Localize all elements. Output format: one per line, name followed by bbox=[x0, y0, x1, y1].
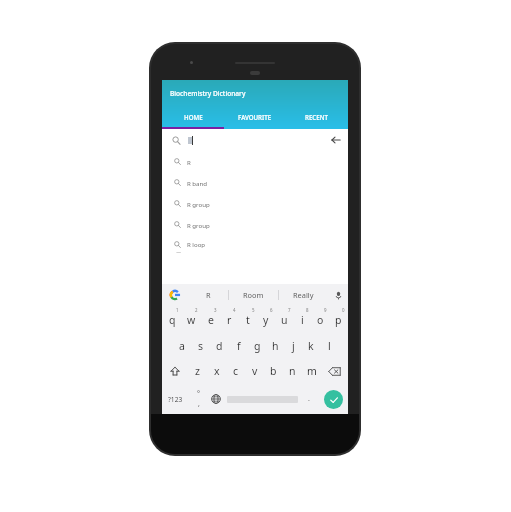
button[interactable]: k bbox=[302, 332, 320, 358]
button[interactable]: Google bbox=[162, 284, 188, 306]
staticText: u bbox=[281, 313, 288, 327]
button[interactable]: m bbox=[302, 358, 321, 384]
button[interactable]: f bbox=[229, 332, 248, 358]
staticText: o bbox=[317, 313, 324, 327]
staticText: w bbox=[187, 313, 196, 327]
button[interactable]: u bbox=[275, 306, 293, 332]
button[interactable]: a bbox=[172, 332, 191, 358]
button[interactable]: j bbox=[284, 332, 302, 358]
staticText: c bbox=[233, 364, 239, 378]
button[interactable]: Shift bbox=[162, 358, 188, 384]
button[interactable]: n bbox=[283, 358, 302, 384]
button[interactable]: R group bbox=[168, 214, 342, 235]
staticText: R band bbox=[187, 179, 208, 187]
button[interactable]: z bbox=[188, 358, 207, 384]
button[interactable]: Back bbox=[328, 132, 344, 148]
staticText: 5 bbox=[252, 307, 255, 313]
staticText: R group bbox=[187, 200, 210, 208]
staticText: g bbox=[254, 339, 261, 353]
staticText: 7 bbox=[288, 307, 291, 313]
staticText: R loop bbox=[187, 240, 206, 248]
staticText: h bbox=[272, 339, 279, 353]
button[interactable]: p bbox=[329, 306, 347, 332]
button[interactable]: s bbox=[191, 332, 210, 358]
staticText: Biochemistry Dictionary bbox=[170, 89, 246, 98]
button[interactable]: R loop bbox=[168, 235, 342, 253]
staticText: ° bbox=[197, 389, 200, 399]
staticText: 9 bbox=[324, 307, 327, 313]
staticText: ?123 bbox=[168, 395, 183, 404]
button[interactable]: o bbox=[311, 306, 329, 332]
button[interactable]: i bbox=[293, 306, 311, 332]
button[interactable] bbox=[225, 384, 300, 414]
staticText: m bbox=[307, 364, 317, 378]
button[interactable]: . bbox=[300, 384, 318, 414]
staticText: Really bbox=[293, 290, 314, 300]
staticText: HOME bbox=[184, 113, 203, 121]
button[interactable]: q bbox=[163, 306, 182, 332]
staticText: v bbox=[252, 364, 258, 378]
staticText: 8 bbox=[306, 307, 309, 313]
staticText: R group bbox=[187, 221, 210, 229]
button[interactable]: Change language bbox=[207, 384, 225, 414]
staticText: Room bbox=[243, 290, 264, 300]
button[interactable]: b bbox=[264, 358, 283, 384]
staticText: s bbox=[198, 339, 204, 353]
button[interactable]: R group bbox=[168, 193, 342, 214]
staticText: 6 bbox=[270, 307, 273, 313]
staticText: 0 bbox=[342, 307, 345, 313]
button[interactable]: Really bbox=[279, 284, 328, 306]
button[interactable]: v bbox=[245, 358, 264, 384]
staticText: , bbox=[198, 399, 200, 409]
button[interactable]: l bbox=[320, 332, 338, 358]
staticText: j bbox=[292, 339, 295, 353]
button[interactable]: FAVOURITE bbox=[224, 107, 286, 129]
button[interactable]: c bbox=[226, 358, 245, 384]
button[interactable]: r bbox=[220, 306, 239, 332]
other: Search bbox=[172, 136, 181, 145]
staticText: . bbox=[308, 394, 310, 404]
staticText: n bbox=[289, 364, 296, 378]
staticText: RECENT bbox=[305, 113, 329, 121]
button[interactable]: R bbox=[188, 284, 228, 306]
staticText: 3 bbox=[214, 307, 217, 313]
staticText: R bbox=[206, 290, 211, 300]
button[interactable]: RECENT bbox=[286, 107, 348, 129]
staticText: k bbox=[308, 339, 314, 353]
staticText: f bbox=[237, 339, 241, 353]
button[interactable]: Room bbox=[229, 284, 278, 306]
staticText: 4 bbox=[233, 307, 236, 313]
staticText: a bbox=[179, 339, 185, 353]
staticText: x bbox=[214, 364, 220, 378]
button[interactable]: e bbox=[201, 306, 220, 332]
button[interactable]: h bbox=[266, 332, 284, 358]
staticText: e bbox=[208, 313, 214, 327]
button[interactable]: ?123 bbox=[162, 384, 189, 414]
staticText: y bbox=[263, 313, 269, 327]
button[interactable]: g bbox=[248, 332, 266, 358]
button[interactable]: R band bbox=[168, 172, 342, 193]
staticText: q bbox=[169, 313, 176, 327]
button[interactable]: Enter bbox=[318, 384, 348, 414]
button[interactable]: y bbox=[257, 306, 275, 332]
staticText: 2 bbox=[195, 307, 198, 313]
button[interactable]: x bbox=[207, 358, 226, 384]
button[interactable]: t bbox=[239, 306, 257, 332]
button[interactable]: Backspace bbox=[321, 358, 348, 384]
button[interactable]: HOME bbox=[162, 107, 224, 129]
button[interactable]: R bbox=[168, 151, 342, 172]
staticText: b bbox=[270, 364, 277, 378]
staticText: R bbox=[187, 158, 191, 166]
staticText: t bbox=[246, 313, 250, 327]
staticText: l bbox=[328, 339, 331, 353]
button[interactable]: d bbox=[210, 332, 229, 358]
button[interactable]: ° bbox=[189, 384, 207, 414]
staticText: r bbox=[227, 313, 232, 327]
staticText: p bbox=[335, 313, 342, 327]
staticText: FAVOURITE bbox=[238, 113, 272, 121]
button[interactable]: w bbox=[182, 306, 201, 332]
staticText: 1 bbox=[176, 307, 179, 313]
button[interactable]: Voice input bbox=[328, 284, 348, 306]
staticText: i bbox=[301, 313, 304, 327]
staticText: d bbox=[216, 339, 223, 353]
